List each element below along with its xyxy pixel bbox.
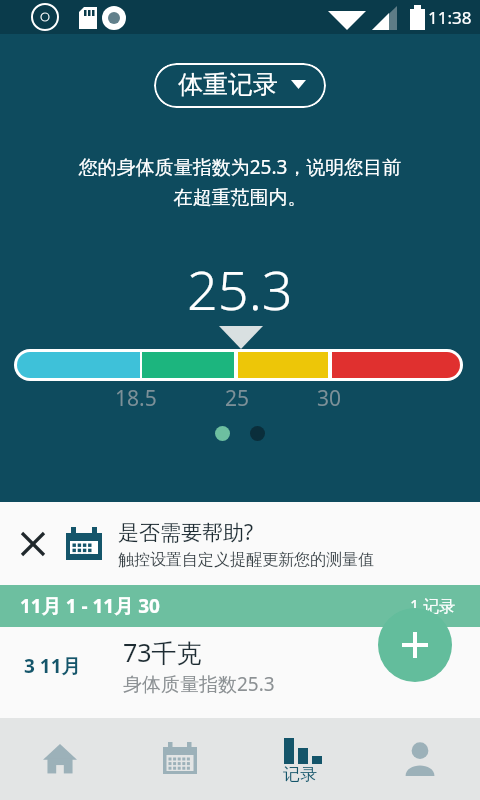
button[interactable]: Profile bbox=[360, 718, 480, 800]
staticText: 73千克 bbox=[123, 635, 202, 669]
staticText: 1 记录 bbox=[410, 595, 456, 617]
button[interactable]: 3 11月 bbox=[0, 627, 480, 705]
button[interactable]: Home bbox=[0, 718, 120, 800]
staticText: 身体质量指数25.3 bbox=[123, 671, 275, 697]
staticText: 25.3 bbox=[187, 252, 293, 326]
staticText: 3 11月 bbox=[24, 653, 81, 679]
staticText: 您的身体质量指数为25.3，说明您目前 在超重范围内。 bbox=[20, 154, 460, 210]
staticText: 11:38 bbox=[428, 6, 472, 29]
staticText: 30 bbox=[317, 384, 342, 413]
button[interactable]: Dismiss bbox=[10, 521, 56, 567]
button[interactable]: 体重记录 bbox=[154, 63, 326, 108]
button[interactable]: Add record bbox=[378, 608, 452, 682]
staticText: 18.5 bbox=[115, 384, 157, 413]
staticText: 是否需要帮助? bbox=[118, 518, 254, 547]
staticText: 体重记录 bbox=[178, 69, 278, 100]
button[interactable]: 11月 1 - 11月 30 bbox=[0, 585, 480, 627]
staticText: 25 bbox=[225, 384, 250, 413]
staticText: 11月 1 - 11月 30 bbox=[20, 593, 160, 619]
button[interactable]: 记录 bbox=[240, 718, 360, 800]
staticText: 触控设置自定义提醒更新您的测量值 bbox=[118, 550, 374, 570]
button[interactable]: Dismiss bbox=[0, 502, 480, 585]
button[interactable]: Calendar bbox=[120, 718, 240, 800]
staticText: 记录 bbox=[283, 764, 317, 785]
